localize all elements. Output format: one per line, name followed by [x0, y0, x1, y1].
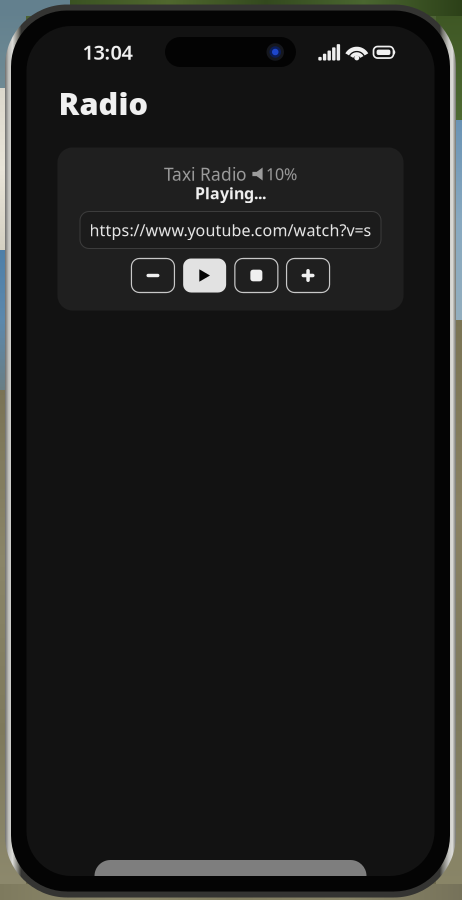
staticText: Taxi Radio: [164, 162, 246, 185]
button[interactable]: Volume up: [287, 258, 330, 292]
button[interactable]: Volume down: [131, 258, 174, 292]
button[interactable]: Stop: [235, 258, 278, 292]
staticText: Playing...: [195, 182, 266, 204]
button[interactable]: Play: [183, 258, 226, 292]
staticText: 13:04: [82, 39, 132, 65]
staticText: https://www.youtube.com/watch?v=s: [89, 219, 371, 241]
staticText: 10%: [266, 163, 297, 185]
staticText: Radio: [58, 83, 148, 123]
